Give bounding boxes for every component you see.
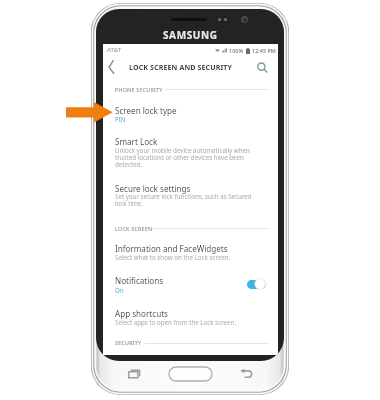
staticText: SECURITY xyxy=(115,339,142,346)
button[interactable]: Notifications xyxy=(115,275,164,286)
button[interactable]: Back xyxy=(240,369,254,380)
button[interactable]: Search xyxy=(253,57,271,75)
staticText: Unlock your mobile device automatically … xyxy=(115,146,255,169)
staticText: Select what to show on the Lock screen. xyxy=(115,253,255,261)
button[interactable]: Recent apps xyxy=(128,369,141,379)
staticText: SAMSUNG xyxy=(163,28,218,42)
button[interactable]: App shortcuts xyxy=(115,308,168,319)
button[interactable]: Notifications toggle xyxy=(244,277,270,291)
button[interactable]: Secure lock settings xyxy=(115,183,191,194)
staticText: AT&T xyxy=(107,46,121,54)
staticText: Set your secure lock functions, such as … xyxy=(115,192,255,208)
staticText: Select apps to open from the Lock screen… xyxy=(115,318,255,326)
staticText: PHONE SECURITY xyxy=(115,86,163,93)
button[interactable]: Navigate up xyxy=(106,57,124,75)
staticText: LOCK SCREEN AND SECURITY xyxy=(129,62,233,72)
staticText: LOCK SCREEN xyxy=(115,225,153,232)
button[interactable]: Screen lock type xyxy=(115,105,177,116)
button[interactable]: Smart Lock xyxy=(115,136,158,147)
staticText: PIN xyxy=(115,115,255,123)
button[interactable]: Information and FaceWidgets xyxy=(115,243,228,254)
staticText: 12:45 PM xyxy=(252,47,276,54)
button[interactable]: Home xyxy=(169,367,212,381)
staticText: On xyxy=(115,286,255,294)
staticText: 100% xyxy=(229,47,244,54)
